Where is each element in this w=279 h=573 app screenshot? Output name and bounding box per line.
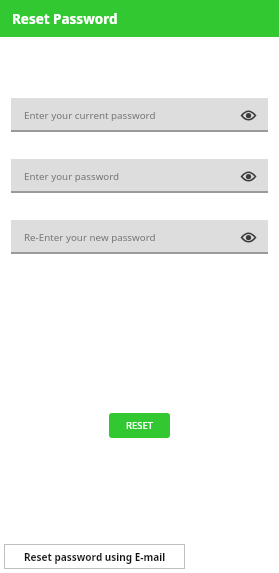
staticText: Re-Enter your new password bbox=[24, 231, 156, 244]
staticText: RESET bbox=[126, 419, 154, 432]
staticText: Enter your current password bbox=[24, 109, 156, 122]
button[interactable]: Enter your current password bbox=[11, 98, 268, 132]
button[interactable]: Reset password using E-mail bbox=[4, 544, 185, 569]
button[interactable]: RESET bbox=[109, 413, 170, 438]
button[interactable]: Show password bbox=[239, 228, 257, 246]
button[interactable]: Show password bbox=[239, 167, 257, 185]
button[interactable]: Enter your password bbox=[11, 159, 268, 193]
button[interactable]: Show password bbox=[239, 106, 257, 124]
staticText: Enter your password bbox=[24, 170, 120, 183]
button[interactable]: Re-Enter your new password bbox=[11, 220, 268, 254]
staticText: Reset password using E-mail bbox=[24, 550, 166, 564]
staticText: Reset Password bbox=[12, 10, 118, 28]
